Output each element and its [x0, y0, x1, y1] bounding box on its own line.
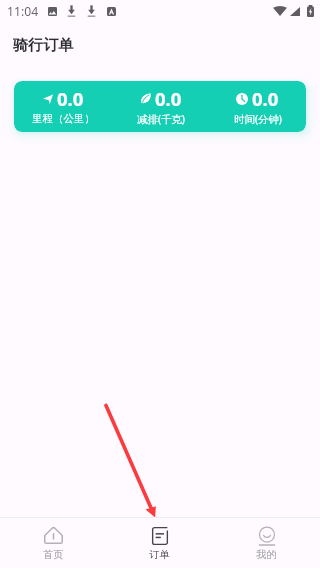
staticText: 0.0 [57, 86, 84, 111]
staticText: 我的 [256, 548, 277, 561]
button[interactable]: 首页 [0, 518, 106, 568]
staticText: 11:04 [7, 3, 39, 20]
staticText: 减排(千克) [137, 112, 185, 126]
staticText: 骑行订单 [13, 36, 73, 55]
staticText: 里程（公里） [32, 112, 95, 125]
button[interactable]: 0.0 [112, 81, 209, 132]
staticText: 0.0 [252, 86, 279, 111]
button[interactable]: 订单 [106, 518, 213, 568]
button[interactable]: 0.0 [14, 81, 112, 132]
staticText: 订单 [149, 548, 170, 561]
staticText: 首页 [43, 548, 64, 561]
button[interactable]: 0.0 [209, 81, 306, 132]
staticText: 0.0 [155, 86, 182, 111]
staticText: 时间(分钟) [234, 112, 282, 126]
button[interactable]: 我的 [213, 518, 320, 568]
